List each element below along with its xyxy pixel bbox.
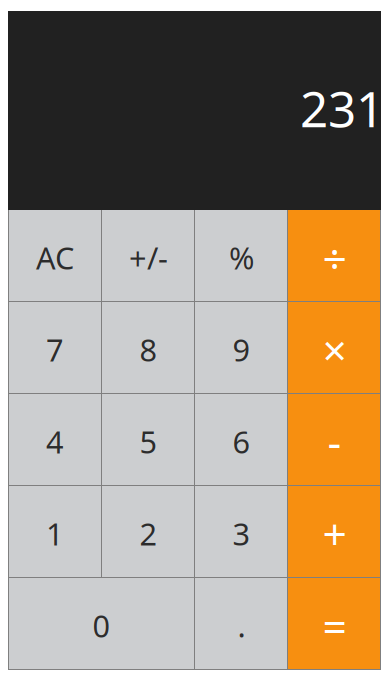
staticText: 3: [232, 513, 250, 554]
button[interactable]: 8: [102, 302, 195, 394]
button[interactable]: %: [195, 210, 288, 302]
button[interactable]: Add: [288, 486, 381, 578]
staticText: +: [322, 505, 346, 562]
staticText: -: [327, 413, 341, 470]
staticText: 1: [46, 513, 64, 554]
button[interactable]: 6: [195, 394, 288, 486]
button[interactable]: 9: [195, 302, 288, 394]
staticText: AC: [36, 237, 74, 278]
button[interactable]: Subtract: [288, 394, 381, 486]
staticText: ×: [322, 321, 346, 378]
staticText: +/-: [129, 237, 168, 278]
button[interactable]: Divide: [288, 210, 381, 302]
button[interactable]: Decimal point: [195, 578, 288, 670]
button[interactable]: 2: [102, 486, 195, 578]
staticText: %: [229, 237, 254, 278]
button[interactable]: +/-: [102, 210, 195, 302]
staticText: 6: [232, 421, 250, 462]
button[interactable]: 3: [195, 486, 288, 578]
staticText: =: [322, 597, 346, 654]
staticText: 0: [92, 605, 110, 646]
staticText: .: [237, 605, 245, 646]
button[interactable]: 5: [102, 394, 195, 486]
staticText: 231: [300, 75, 384, 141]
staticText: 9: [232, 329, 250, 370]
button[interactable]: 1: [8, 486, 102, 578]
button[interactable]: 0: [8, 578, 195, 670]
staticText: 4: [46, 421, 64, 462]
button[interactable]: Multiply: [288, 302, 381, 394]
button[interactable]: 7: [8, 302, 102, 394]
staticText: ÷: [322, 229, 346, 286]
button[interactable]: 4: [8, 394, 102, 486]
staticText: 5: [139, 421, 157, 462]
staticText: 7: [46, 329, 64, 370]
staticText: 8: [139, 329, 157, 370]
button[interactable]: All clear: [8, 210, 102, 302]
button[interactable]: Equals: [288, 578, 381, 670]
staticText: 2: [139, 513, 157, 554]
